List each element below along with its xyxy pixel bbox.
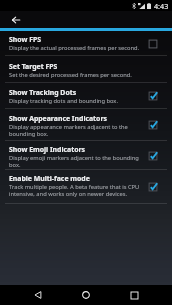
staticText: Display appearance markers adjacent to t… — [9, 123, 141, 138]
staticText: Track multiple people. A beta feature th… — [9, 183, 141, 198]
staticText: Enable Multi-face mode — [9, 174, 90, 183]
staticText: Display the actual processed frames per … — [9, 44, 140, 52]
button[interactable]: Recent apps — [124, 285, 144, 305]
button[interactable]: Back — [28, 285, 48, 305]
button[interactable]: Show Tracking Dots — [0, 83, 172, 109]
staticText: Show FPS — [9, 35, 41, 44]
staticText: Show Tracking Dots — [9, 88, 77, 97]
button[interactable]: Set Target FPS — [0, 56, 172, 83]
button[interactable]: Home — [76, 285, 96, 305]
staticText: Set the desired processed frames per sec… — [9, 71, 132, 79]
staticText: 4:43 — [154, 1, 169, 11]
staticText: Display tracking dots and bounding box. — [9, 97, 118, 105]
button[interactable]: Show Emoji Indicators — [0, 141, 172, 170]
staticText: Show Appearance Indicators — [9, 114, 107, 123]
button[interactable]: Show Appearance Indicators — [0, 109, 172, 141]
button[interactable]: Enable Multi-face mode — [0, 170, 172, 204]
button[interactable]: Show FPS — [0, 31, 172, 56]
staticText: Set Target FPS — [9, 62, 58, 71]
button[interactable]: Navigate up — [9, 13, 23, 27]
staticText: Show Emoji Indicators — [9, 145, 86, 154]
staticText: Display emoji markers adjacent to the bo… — [9, 154, 141, 169]
